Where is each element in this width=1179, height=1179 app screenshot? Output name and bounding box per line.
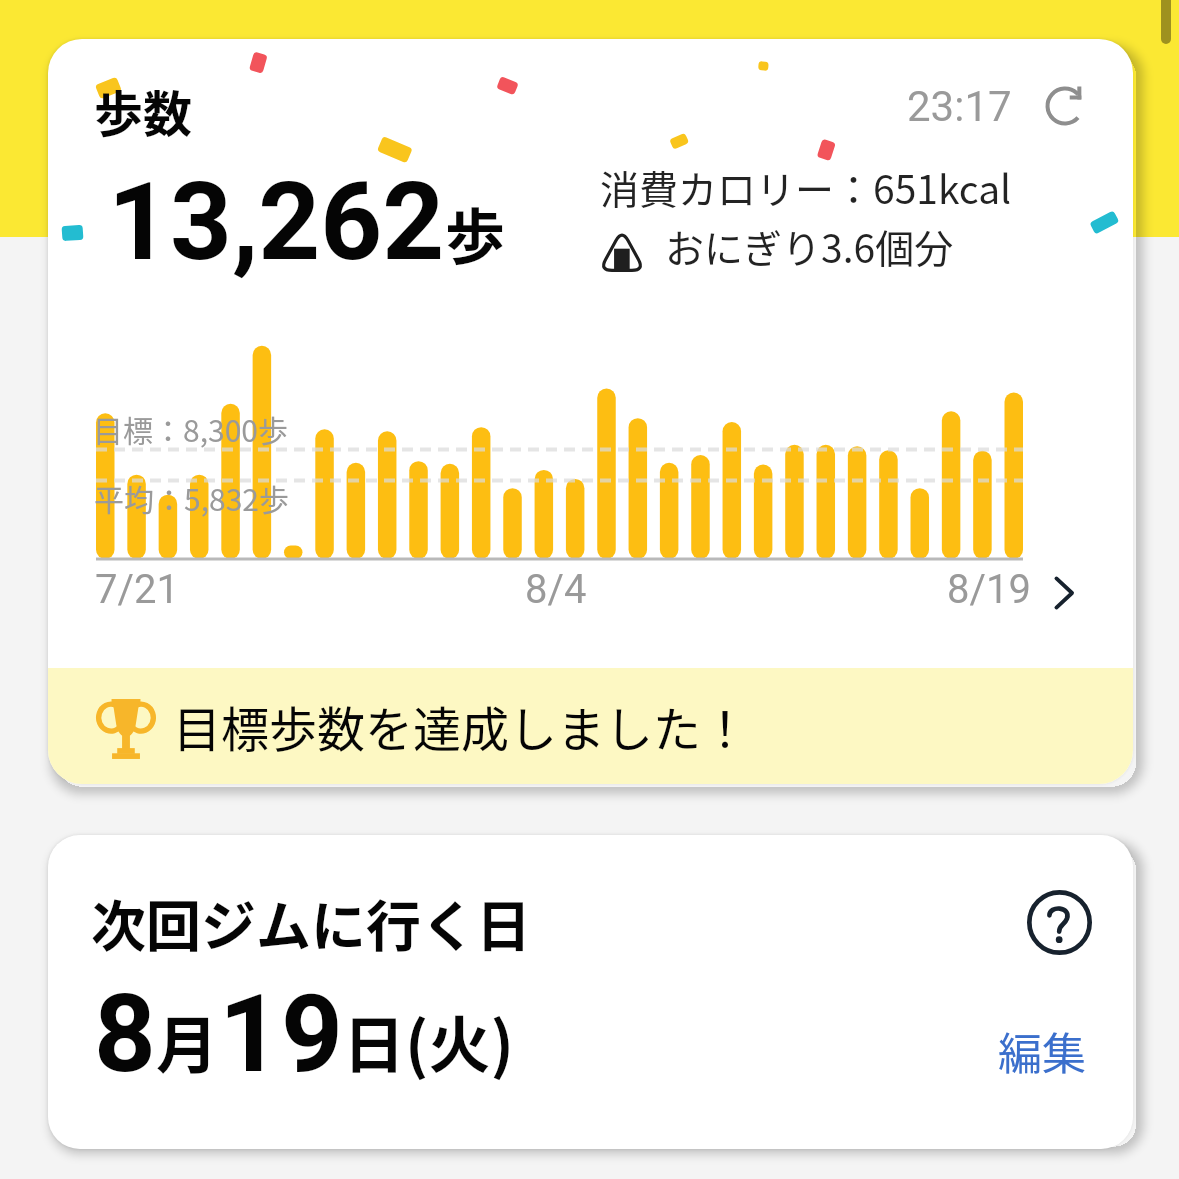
button[interactable]: 次回ジムに行く日 — [48, 835, 1133, 1149]
staticText: 8 — [94, 971, 156, 1098]
staticText: 日(火) — [343, 996, 514, 1086]
button[interactable]: 歩数グラフ — [96, 334, 1023, 559]
staticText: 13,262 — [108, 159, 445, 286]
staticText: おにぎり3.6個分 — [665, 218, 954, 274]
staticText: 編集 — [998, 1019, 1086, 1083]
button[interactable]: 編集 — [992, 1013, 1092, 1089]
button[interactable]: ヘルプ — [1027, 890, 1092, 955]
staticText: 19 — [219, 971, 343, 1098]
staticText: 歩 — [445, 189, 505, 276]
staticText: 次回ジムに行く日 — [91, 882, 532, 962]
staticText: 歩数 — [94, 75, 193, 146]
staticText: 23:17 — [907, 82, 1012, 131]
button[interactable]: 目標歩数を達成しました！ — [48, 668, 1133, 784]
staticText: 8/4 — [525, 566, 587, 613]
staticText: 消費カロリー：651kcal — [600, 159, 1012, 215]
staticText: 平均：5,832歩 — [94, 476, 289, 519]
staticText: 8/19 — [947, 566, 1031, 613]
button[interactable]: 更新 — [1037, 78, 1093, 134]
staticText: 月 — [156, 996, 219, 1086]
staticText: 目標歩数を達成しました！ — [173, 691, 750, 761]
staticText: 目標：8,300歩 — [93, 407, 288, 450]
button[interactable]: 次の期間 — [1034, 565, 1090, 621]
staticText: 7/21 — [95, 566, 179, 613]
